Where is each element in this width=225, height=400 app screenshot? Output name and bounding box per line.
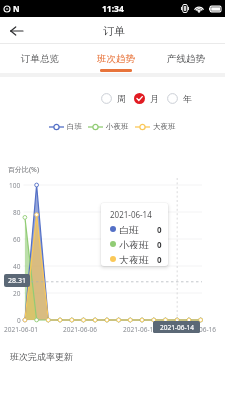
button[interactable]: 订单总览 <box>14 44 66 73</box>
staticText: 0 <box>157 254 162 264</box>
button[interactable]: 班次趋势 <box>90 44 142 73</box>
staticText: 班次趋势 <box>97 53 135 65</box>
button[interactable]: 大夜班 <box>135 122 176 131</box>
staticText: 订单 <box>103 24 125 38</box>
button[interactable]: 周 <box>101 93 126 104</box>
staticText: 周 <box>117 93 126 104</box>
staticText: 大夜班 <box>119 254 149 264</box>
staticText: N <box>13 3 20 14</box>
staticText: 11:34 <box>102 3 124 15</box>
staticText: 2021-06-01 <box>4 325 38 334</box>
button[interactable]: 白班 <box>49 122 82 131</box>
button[interactable]: 月 <box>134 93 159 104</box>
staticText: 白班 <box>119 224 139 234</box>
staticText: 0 <box>157 239 162 249</box>
staticText: 06-16 <box>199 325 216 334</box>
staticText: 0 <box>157 224 162 234</box>
staticText: 小夜班 <box>119 239 149 249</box>
staticText: 2021-06-06 <box>63 325 97 334</box>
staticText: 2021-06-14 <box>110 209 152 220</box>
button[interactable]: 产线趋势 <box>160 44 212 73</box>
staticText: 20 <box>13 289 21 298</box>
staticText: 60 <box>13 235 21 244</box>
staticText: 小夜班 <box>106 122 129 131</box>
staticText: 100 <box>9 181 21 190</box>
button[interactable]: 年 <box>167 93 192 104</box>
staticText: 白班 <box>67 122 82 131</box>
button[interactable]: Back <box>0 17 32 44</box>
button[interactable]: 小夜班 <box>88 122 129 131</box>
staticText: 28.31 <box>8 276 26 286</box>
staticText: 0 <box>17 316 21 325</box>
staticText: 80 <box>13 208 21 217</box>
staticText: 班次完成率更新 <box>10 351 73 362</box>
staticText: 大夜班 <box>153 122 176 131</box>
staticText: 订单总览 <box>21 53 59 65</box>
staticText: 百分比(%) <box>8 165 40 175</box>
staticText: 月 <box>150 93 159 104</box>
staticText: 2021-06-14 <box>160 323 194 332</box>
staticText: 2021-06-11 <box>123 325 157 334</box>
staticText: 年 <box>183 93 192 104</box>
staticText: 40 <box>13 262 21 271</box>
staticText: 产线趋势 <box>167 53 205 65</box>
